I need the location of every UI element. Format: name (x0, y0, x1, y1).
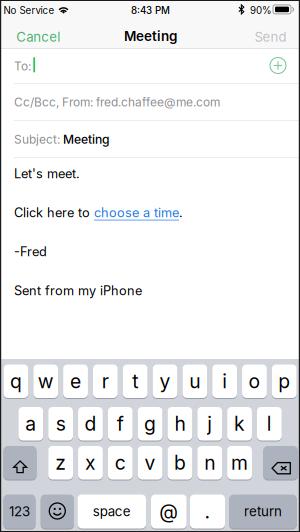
button[interactable]: v (138, 445, 162, 480)
button[interactable]: p (272, 364, 297, 398)
button[interactable]: Shift (3, 445, 36, 480)
button[interactable]: n (197, 445, 222, 480)
button[interactable]: j (197, 406, 222, 441)
staticText: u (189, 370, 200, 393)
button[interactable]: a (18, 406, 43, 441)
staticText: return (244, 503, 282, 519)
staticText: Cc/Bcc, From: fred.chaffee@me.com (14, 95, 220, 109)
staticText: t (132, 370, 138, 393)
staticText: g (144, 412, 156, 435)
button[interactable]: Emoji keyboard (41, 494, 74, 529)
button[interactable]: k (227, 406, 252, 441)
button[interactable]: t (123, 364, 148, 398)
staticText: e (70, 370, 81, 393)
staticText: Subject: (14, 132, 60, 146)
staticText: m (231, 451, 248, 474)
staticText: -Fred (14, 244, 47, 259)
staticText: Meeting (63, 132, 110, 147)
button[interactable]: Send (250, 24, 290, 50)
staticText: v (145, 451, 156, 474)
staticText: n (204, 451, 215, 474)
staticText: p (278, 370, 290, 393)
staticText: Sent from my iPhone (14, 283, 142, 298)
button[interactable]: z (48, 445, 73, 480)
staticText: To: (14, 59, 31, 73)
button[interactable]: x (78, 445, 103, 480)
staticText: 8:43 PM (131, 4, 170, 16)
staticText: . (179, 205, 183, 220)
button[interactable]: g (138, 406, 162, 441)
staticText: k (234, 412, 245, 435)
button[interactable]: w (33, 364, 58, 398)
button[interactable]: space (77, 494, 146, 529)
staticText: c (115, 451, 126, 474)
button[interactable]: s (48, 406, 73, 441)
button[interactable]: return (229, 494, 297, 529)
button[interactable]: @ (151, 494, 187, 529)
button[interactable]: Add recipient (270, 57, 286, 73)
staticText: r (102, 370, 109, 393)
button[interactable]: Delete (263, 445, 298, 480)
staticText: Let's meet. (14, 166, 80, 181)
staticText: b (174, 451, 186, 474)
button[interactable]: Cancel (12, 24, 64, 50)
staticText: q (10, 370, 22, 393)
staticText: . (204, 500, 210, 523)
staticText: x (85, 451, 96, 474)
button[interactable]: u (182, 364, 207, 398)
staticText: Click here to (14, 205, 94, 220)
staticText: l (267, 412, 272, 435)
staticText: @ (159, 500, 178, 523)
staticText: y (159, 370, 170, 393)
staticText: s (56, 412, 66, 435)
staticText: choose a time (94, 205, 179, 220)
staticText: Meeting (124, 28, 177, 44)
button[interactable]: d (78, 406, 103, 441)
staticText: space (93, 503, 131, 519)
button[interactable]: 123 (3, 494, 35, 529)
staticText: d (84, 412, 96, 435)
button[interactable]: . (190, 494, 225, 529)
staticText: w (38, 370, 54, 393)
staticText: i (222, 370, 227, 393)
button[interactable]: h (167, 406, 192, 441)
button[interactable]: q (3, 364, 28, 398)
button[interactable]: o (242, 364, 267, 398)
staticText: 90% (250, 4, 272, 16)
staticText: j (207, 412, 212, 435)
staticText: 123 (9, 503, 30, 519)
button[interactable]: r (93, 364, 118, 398)
button[interactable]: l (257, 406, 282, 441)
staticText: a (25, 412, 36, 435)
button[interactable]: f (108, 406, 133, 441)
button[interactable]: c (108, 445, 133, 480)
staticText: Cancel (16, 29, 60, 45)
staticText: h (174, 412, 185, 435)
button[interactable]: choose a time (94, 205, 179, 220)
staticText: f (117, 412, 124, 435)
button[interactable]: e (63, 364, 88, 398)
staticText: No Service (4, 4, 55, 16)
button[interactable]: i (212, 364, 237, 398)
staticText: z (55, 451, 66, 474)
button[interactable]: m (227, 445, 252, 480)
button[interactable]: y (153, 364, 177, 398)
button[interactable]: b (167, 445, 192, 480)
staticText: Send (254, 29, 286, 45)
staticText: o (248, 370, 260, 393)
